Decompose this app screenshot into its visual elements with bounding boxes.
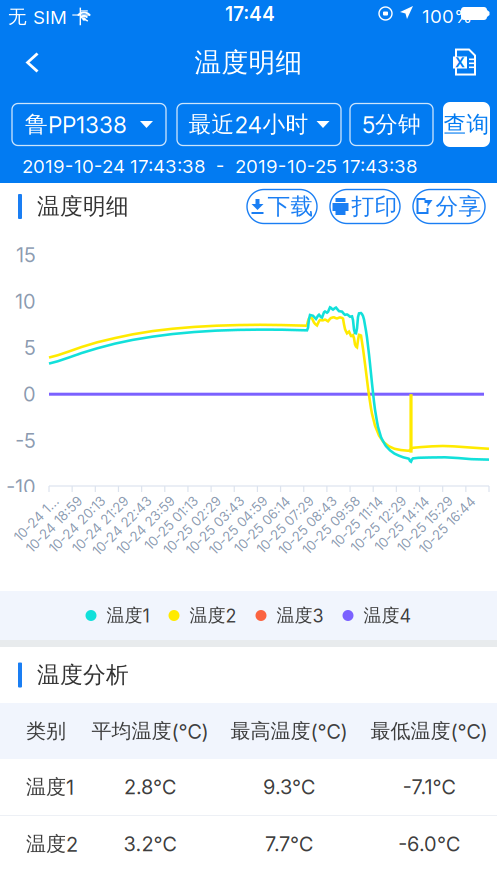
button[interactable]: 打印: [330, 189, 400, 223]
button[interactable]: 分享: [413, 189, 485, 223]
staticText: 7.7℃: [265, 832, 313, 856]
staticText: 10-25 12:29: [326, 493, 398, 509]
staticText: 10-25 02:29: [138, 493, 213, 509]
staticText: 分享: [435, 192, 481, 221]
staticText: 17:44: [225, 2, 275, 26]
staticText: 10-24 21:29: [47, 493, 120, 509]
button[interactable]: 5分钟: [350, 103, 433, 145]
staticText: 10-24 23:59: [91, 493, 167, 509]
staticText: 2.8℃: [124, 775, 176, 799]
staticText: 鲁PP1338: [25, 110, 127, 139]
staticText: -10: [6, 475, 36, 499]
staticText: 100%: [422, 5, 472, 28]
button[interactable]: 最近24小时: [177, 103, 341, 145]
button[interactable]: Export to Excel: [443, 40, 487, 84]
staticText: -7.1℃: [402, 775, 455, 799]
staticText: 10-24 20:13: [24, 493, 97, 509]
staticText: 平均温度(℃): [91, 718, 208, 744]
staticText: 5: [24, 336, 36, 360]
staticText: 类别: [26, 718, 66, 744]
staticText: -5: [15, 428, 36, 453]
staticText: 10-25 11:14: [308, 493, 375, 509]
staticText: 温度2: [26, 831, 78, 857]
staticText: -6.0℃: [398, 832, 460, 856]
staticText: 最低温度(℃): [370, 718, 487, 744]
staticText: 9.3℃: [263, 775, 315, 799]
button[interactable]: 下载: [247, 189, 317, 223]
staticText: 下载: [267, 192, 313, 221]
staticText: 10-25 08:43: [253, 493, 329, 509]
staticText: 3.2℃: [123, 832, 176, 856]
staticText: 15: [16, 243, 36, 267]
staticText: 温度明细: [37, 192, 129, 221]
staticText: 温度4: [363, 604, 411, 627]
staticText: 最高温度(℃): [230, 718, 347, 744]
staticText: 10: [15, 289, 36, 313]
staticText: 查询: [443, 110, 489, 139]
staticText: 0: [23, 382, 36, 406]
staticText: 温度1: [106, 604, 149, 627]
staticText: 10-25 07:29: [232, 493, 306, 509]
staticText: 10-24 18:59: [1, 493, 74, 509]
staticText: 10-24 22:43: [67, 493, 144, 509]
staticText: 10-24 1...: [0, 493, 51, 509]
staticText: 5分钟: [362, 110, 421, 139]
staticText: 10-25 15:29: [373, 493, 445, 509]
staticText: X: [455, 54, 465, 70]
staticText: 10-25 04:59: [183, 493, 259, 509]
staticText: 温度1: [26, 774, 74, 800]
staticText: 温度分析: [37, 661, 129, 689]
staticText: 温度3: [276, 604, 323, 627]
staticText: 10-25 16:44: [394, 493, 468, 509]
staticText: 10-25 03:43: [160, 493, 236, 509]
button[interactable]: 鲁PP1338: [12, 103, 166, 145]
button[interactable]: 查询: [443, 102, 490, 147]
staticText: 10-25 14:14: [350, 493, 421, 509]
staticText: 2019-10-24 17:43:38 - 2019-10-25 17:43:3…: [22, 155, 418, 178]
staticText: 10-25 01:13: [121, 493, 190, 509]
staticText: 10-25 09:58: [277, 493, 352, 509]
staticText: 10-25 06:14: [210, 493, 283, 509]
staticText: 温度明细: [194, 46, 302, 79]
button[interactable]: Back: [10, 40, 54, 84]
staticText: 最近24小时: [188, 110, 308, 139]
staticText: 温度2: [189, 604, 236, 627]
staticText: 打印: [351, 192, 397, 221]
staticText: 无 SIM 卡: [8, 5, 91, 28]
